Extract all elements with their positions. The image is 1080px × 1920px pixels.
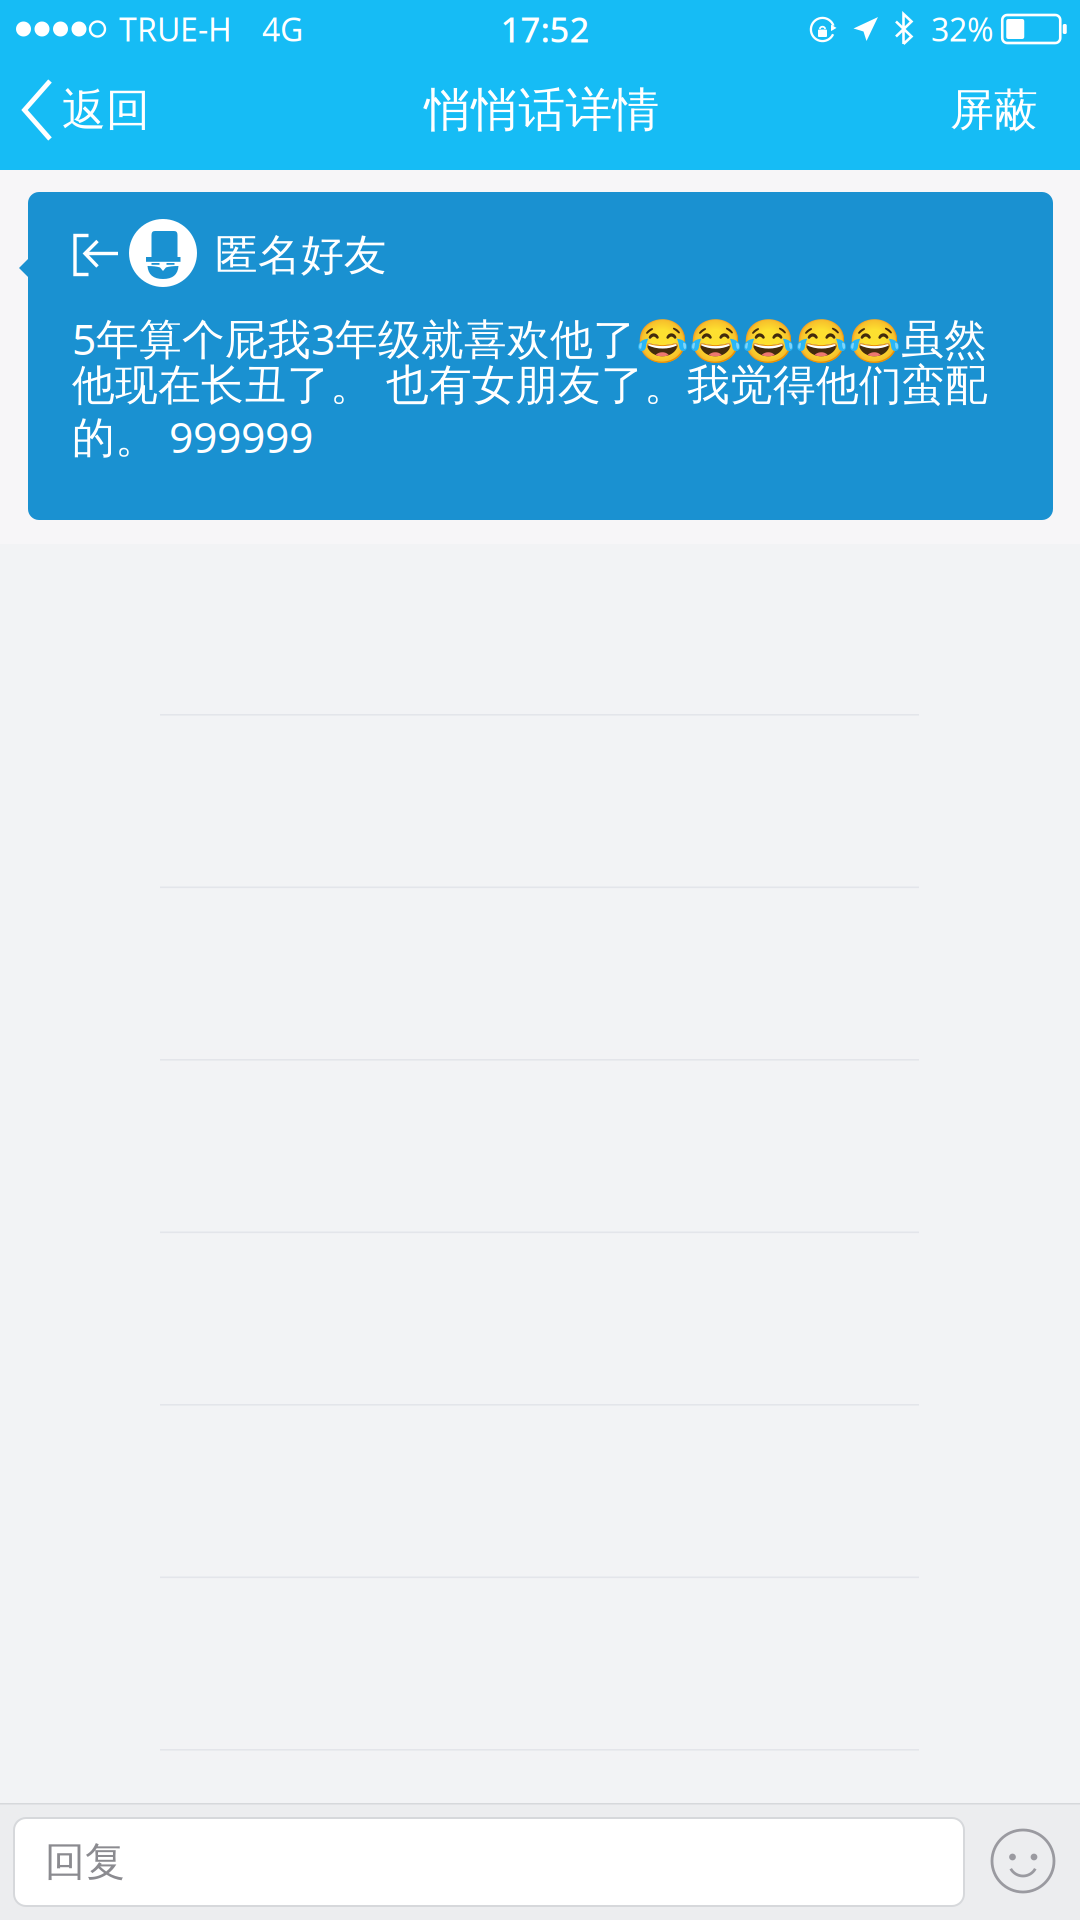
staticText: 他现在长丑了。 也有女朋友了。我觉得他们蛮配 (72, 359, 988, 411)
button[interactable]: Emoji keyboard (972, 1810, 1074, 1912)
button[interactable]: 回复 (14, 1818, 964, 1906)
staticText: 4G (262, 8, 303, 50)
staticText: 屏蔽 (950, 83, 1038, 137)
staticText: 的。 999999 (72, 408, 313, 465)
staticText: 返回 (62, 83, 150, 137)
staticText: TRUE-H (119, 8, 232, 50)
staticText: 悄悄话详情 (424, 81, 659, 139)
button[interactable]: 返回 (0, 58, 170, 170)
staticText: 回复 (45, 1837, 125, 1886)
staticText: 匿名好友 (215, 229, 387, 281)
button[interactable]: 屏蔽 (926, 58, 1080, 170)
staticText: 17:52 (500, 6, 589, 52)
staticText: 5年算个屁我3年级就喜欢他了😂😂😂😂😂虽然 (72, 310, 987, 367)
staticText: 32% (931, 8, 994, 50)
